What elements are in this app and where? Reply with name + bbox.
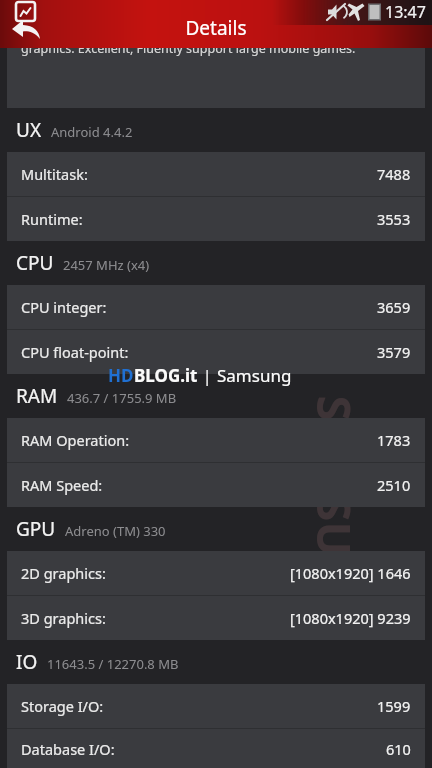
staticText: 3D graphics: [21,608,106,628]
staticText: 3553 [377,209,411,229]
staticText: IO [16,649,38,675]
button[interactable]: RAM Speed: [7,463,425,507]
button[interactable]: Multitask: [7,152,425,196]
staticText: 610 [386,739,411,759]
button[interactable]: 2D graphics: [7,551,425,595]
staticText: [1080x1920] 1646 [290,563,411,583]
staticText: RAM [16,383,58,409]
button[interactable]: CPU float-point: [7,330,425,374]
button[interactable]: 3D graphics: [7,596,425,640]
staticText: GPU [16,516,56,542]
staticText: 13:47 [385,1,426,23]
staticText: 11643.5 / 12270.8 MB [47,655,179,673]
staticText: Storage I/O: [21,696,104,716]
button[interactable]: Back [8,0,64,48]
staticText: 7488 [377,164,411,184]
staticText: CPU [16,250,54,276]
staticText: 1599 [377,696,411,716]
staticText: 2457 MHz (x4) [63,256,150,274]
staticText: BLOG.it [134,364,198,387]
staticText: RAM Speed: [21,475,103,495]
staticText: CPU float-point: [21,342,129,362]
staticText: 2D graphics: [21,563,106,583]
staticText: 3579 [377,342,411,362]
staticText: RAM Operation: [21,430,130,450]
staticText: 436.7 / 1755.9 MB [67,389,177,407]
staticText: Adreno (TM) 330 [65,522,166,540]
staticText: Samsung [217,364,292,387]
staticText: Details [0,15,432,41]
button[interactable]: Storage I/O: [7,684,425,728]
staticText: UX [16,117,42,143]
staticText: 3659 [377,297,411,317]
button[interactable]: Database I/O: [7,729,425,768]
staticText: 2510 [377,475,411,495]
staticText: HD [108,364,134,387]
button[interactable]: RAM Operation: [7,418,425,462]
staticText: Database I/O: [21,739,115,759]
staticText: [1080x1920] 9239 [290,608,411,628]
staticText: Android 4.4.2 [51,123,133,141]
staticText: CPU integer: [21,297,107,317]
staticText: graphics. Excellent, Fluently support la… [21,48,356,57]
staticText: 1783 [377,430,411,450]
staticText: Runtime: [21,209,83,229]
button[interactable]: Runtime: [7,197,425,241]
button[interactable]: CPU integer: [7,285,425,329]
staticText: SAMSUNG [302,395,365,627]
button[interactable]: graphics. Excellent, Fluently support la… [7,48,425,108]
staticText: Multitask: [21,164,88,184]
staticText: | [198,364,217,387]
